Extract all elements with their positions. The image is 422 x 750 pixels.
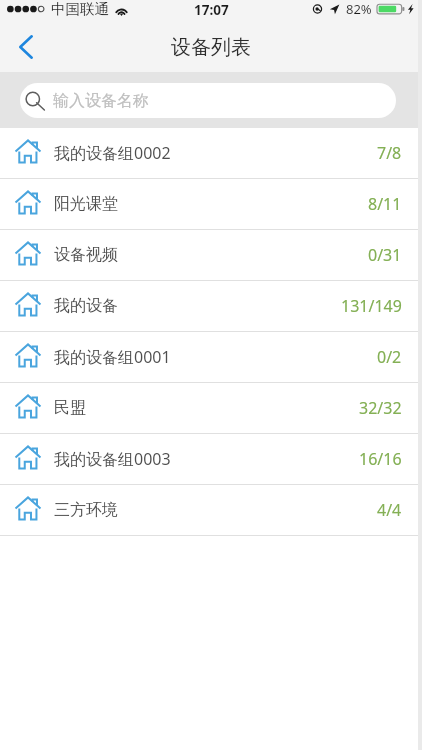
staticText: 我的设备 xyxy=(54,296,118,316)
staticText: 7/8 xyxy=(377,142,402,164)
staticText: 0/2 xyxy=(377,346,402,368)
button[interactable]: 我的设备组0002 xyxy=(0,128,422,178)
button[interactable]: 输入设备名称 xyxy=(20,83,396,118)
staticText: 阳光课堂 xyxy=(54,194,118,214)
button[interactable]: 我的设备 xyxy=(0,281,422,331)
button[interactable]: 我的设备组0001 xyxy=(0,332,422,382)
staticText: 8/11 xyxy=(368,193,402,215)
staticText: 17:07 xyxy=(194,1,229,19)
button[interactable]: 设备视频 xyxy=(0,230,422,280)
button[interactable]: Back xyxy=(0,24,52,70)
button[interactable]: 民盟 xyxy=(0,383,422,433)
staticText: 设备列表 xyxy=(171,35,251,60)
staticText: 民盟 xyxy=(54,398,86,418)
staticText: 中国联通 xyxy=(51,0,109,18)
staticText: 我的设备组0003 xyxy=(54,448,171,470)
staticText: 131/149 xyxy=(341,295,402,317)
staticText: 我的设备组0002 xyxy=(54,142,171,164)
staticText: 设备视频 xyxy=(54,245,118,265)
staticText: 三方环境 xyxy=(54,500,118,520)
staticText: 输入设备名称 xyxy=(53,91,149,111)
staticText: 0/31 xyxy=(368,244,402,266)
button[interactable]: 我的设备组0003 xyxy=(0,434,422,484)
button[interactable]: 阳光课堂 xyxy=(0,179,422,229)
staticText: 16/16 xyxy=(359,448,402,470)
staticText: 我的设备组0001 xyxy=(54,346,171,368)
button[interactable]: 三方环境 xyxy=(0,485,422,535)
staticText: 32/32 xyxy=(359,397,402,419)
staticText: 82% xyxy=(346,0,372,18)
staticText: 4/4 xyxy=(377,499,402,521)
